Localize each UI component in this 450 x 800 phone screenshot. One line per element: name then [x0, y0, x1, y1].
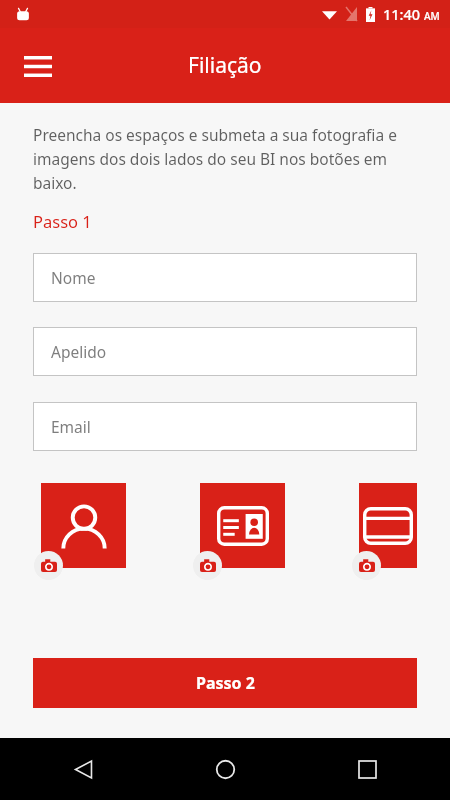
button[interactable]: Passo 2 [33, 658, 417, 708]
button[interactable]: Open navigation menu [14, 42, 62, 90]
staticText: Passo 2 [196, 672, 255, 694]
staticText: Nome [51, 267, 96, 288]
staticText: Email [51, 416, 91, 437]
staticText: Preencha os espaços e submeta a sua foto… [33, 124, 410, 193]
staticText: AM [424, 9, 440, 23]
button[interactable]: Camera [34, 551, 63, 580]
button[interactable]: Photograph ID front [200, 483, 285, 568]
staticText: Passo 1 [33, 210, 92, 232]
button[interactable]: Camera [352, 551, 381, 580]
button[interactable]: Back [60, 746, 106, 792]
staticText: 11:40 [383, 4, 421, 24]
button[interactable]: Nome [33, 253, 417, 302]
staticText: Apelido [51, 341, 107, 362]
button[interactable]: Apelido [33, 327, 417, 376]
staticText: Filiação [188, 51, 262, 80]
button[interactable]: Camera [193, 551, 222, 580]
button[interactable]: Home [202, 746, 248, 792]
button[interactable]: Email [33, 402, 417, 451]
button[interactable]: Take profile photo [41, 483, 126, 568]
button[interactable]: Photograph ID back [359, 483, 417, 568]
button[interactable]: Recent apps [344, 746, 390, 792]
